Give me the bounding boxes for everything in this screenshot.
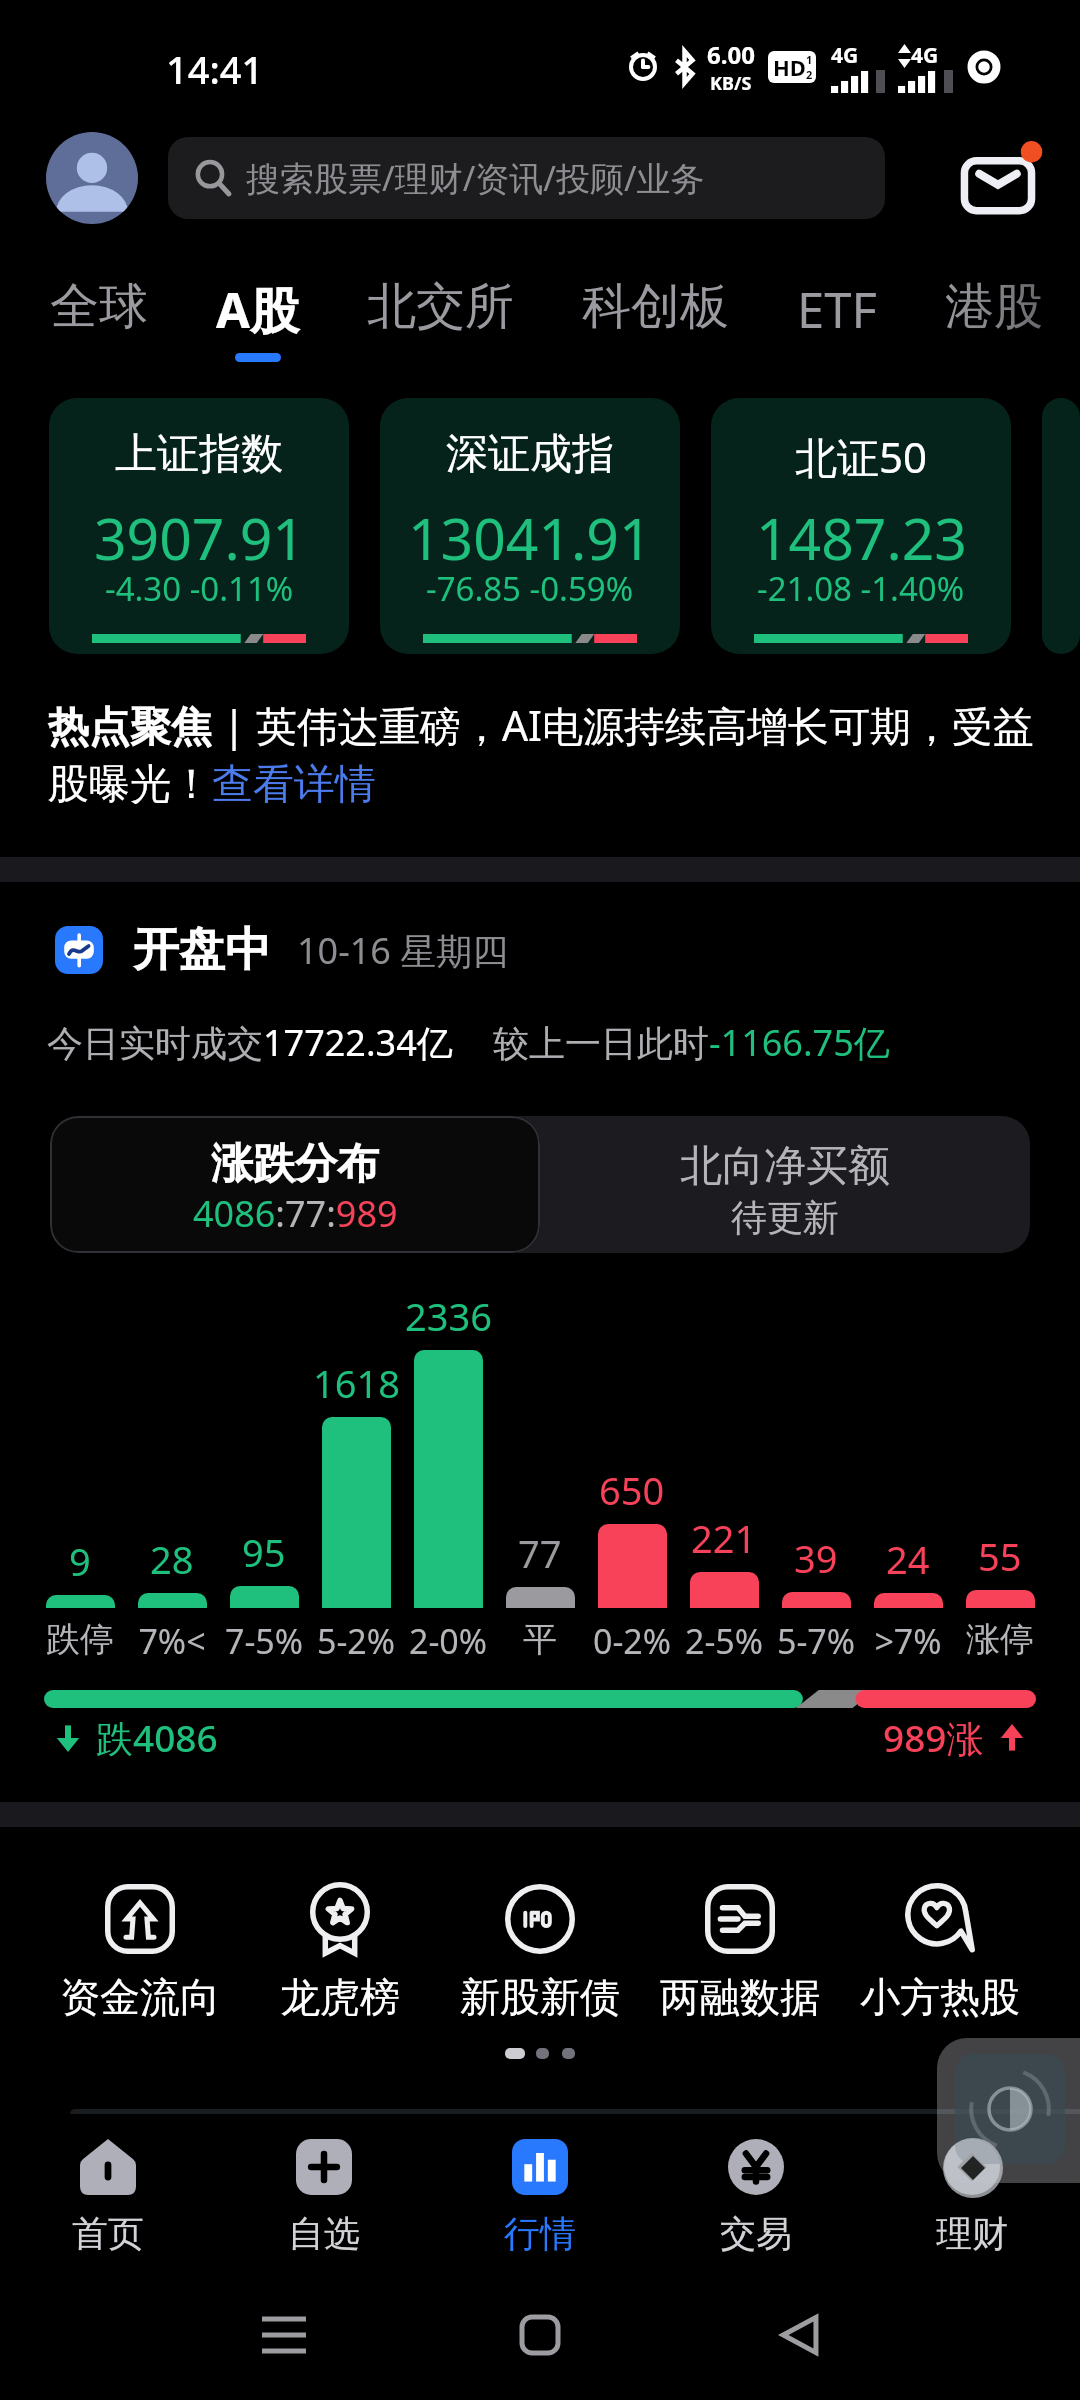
- staticText: 跌4086: [96, 1712, 218, 1763]
- staticText: 搜索股票/理财/资讯/投顾/业务: [246, 155, 705, 201]
- staticText: 2: [806, 67, 813, 82]
- staticText: 龙虎榜: [280, 1972, 400, 2022]
- staticText: 10-16 星期四: [297, 926, 509, 975]
- button[interactable]: 深证成指: [380, 398, 680, 654]
- staticText: 科创板: [582, 276, 729, 338]
- button[interactable]: 资金流向: [40, 1884, 240, 2022]
- staticText: 95: [242, 1526, 286, 1578]
- staticText: 两融数据: [660, 1972, 820, 2022]
- staticText: 全球: [50, 276, 148, 338]
- staticText: 1: [806, 52, 813, 67]
- staticText: 2-5%: [678, 1618, 770, 1664]
- button[interactable]: 新股新债: [440, 1884, 640, 2022]
- button[interactable]: 行情: [432, 2130, 648, 2260]
- staticText: 3907.91: [94, 499, 305, 577]
- staticText: ETF: [797, 276, 877, 343]
- staticText: 7%<: [126, 1618, 218, 1664]
- button[interactable]: Screenshot tool: [943, 2138, 1003, 2198]
- staticText: HD: [773, 52, 806, 82]
- staticText: 北证50: [795, 428, 928, 485]
- staticText: 13041.91: [408, 499, 652, 577]
- staticText: 资金流向: [60, 1972, 220, 2022]
- button[interactable]: 交易: [648, 2130, 864, 2260]
- staticText: 首页: [72, 2211, 144, 2256]
- staticText: 24: [886, 1533, 930, 1585]
- button[interactable]: Recent apps: [242, 2305, 326, 2365]
- button[interactable]: 全球: [16, 266, 182, 348]
- button[interactable]: 两融数据: [640, 1884, 840, 2022]
- staticText: 深证成指: [446, 428, 614, 481]
- staticText: 1487.23: [756, 499, 967, 577]
- staticText: 新股新债: [460, 1972, 620, 2022]
- staticText: >7%: [862, 1618, 954, 1664]
- staticText: 77: [518, 1527, 562, 1579]
- button[interactable]: 龙虎榜: [240, 1884, 440, 2022]
- button[interactable]: 北向净买额: [540, 1116, 1030, 1253]
- button[interactable]: Theme toggle: [955, 2054, 1065, 2164]
- button[interactable]: 上证指数: [49, 398, 349, 654]
- staticText: 4G: [831, 41, 859, 70]
- staticText: -4.30 -0.11%: [105, 566, 294, 611]
- button[interactable]: 港股: [911, 266, 1077, 348]
- button[interactable]: More indices: [1042, 398, 1080, 654]
- staticText: 2336: [405, 1290, 492, 1342]
- staticText: A股: [216, 276, 299, 343]
- staticText: 跌停: [34, 1618, 126, 1661]
- staticText: 14:41: [166, 43, 264, 95]
- staticText: 7-5%: [218, 1618, 310, 1664]
- staticText: 港股: [945, 276, 1043, 338]
- staticText: 北交所: [367, 276, 514, 338]
- button[interactable]: ETF: [763, 266, 911, 353]
- staticText: 交易: [720, 2211, 792, 2256]
- staticText: 4G: [911, 41, 939, 70]
- staticText: 涨跌分布: [211, 1138, 379, 1191]
- button[interactable]: 理财: [864, 2130, 1080, 2260]
- staticText: 涨停: [954, 1618, 1046, 1661]
- staticText: 650: [599, 1464, 665, 1516]
- button[interactable]: Home: [498, 2305, 582, 2365]
- staticText: KB/S: [710, 71, 752, 96]
- staticText: 理财: [936, 2211, 1008, 2256]
- staticText: 0-2%: [586, 1618, 678, 1664]
- button[interactable]: 科创板: [548, 266, 763, 348]
- staticText: 今日实时成交17722.34亿: [47, 1018, 453, 1067]
- staticText: 55: [978, 1530, 1022, 1582]
- staticText: -21.08 -1.40%: [757, 566, 965, 611]
- button[interactable]: Profile: [46, 132, 138, 224]
- button[interactable]: 热点聚焦 | 英伟达重磅，AI电源持续高增长可期，受益股曝光！查看详情: [0, 697, 1080, 810]
- button[interactable]: 北证50: [711, 398, 1011, 654]
- button[interactable]: 小方热股: [840, 1884, 1040, 2022]
- staticText: 1618: [313, 1357, 400, 1409]
- staticText: 行情: [504, 2211, 576, 2256]
- staticText: 小方热股: [860, 1972, 1020, 2022]
- staticText: 自选: [288, 2211, 360, 2256]
- button[interactable]: 北交所: [333, 266, 548, 348]
- button[interactable]: 首页: [0, 2130, 216, 2260]
- staticText: 9: [69, 1535, 91, 1587]
- staticText: 6.00: [707, 38, 755, 71]
- staticText: 开盘中: [133, 921, 271, 979]
- staticText: 2-0%: [402, 1618, 494, 1664]
- staticText: 989涨: [883, 1712, 984, 1763]
- staticText: 5-2%: [310, 1618, 402, 1664]
- button[interactable]: Back: [758, 2305, 842, 2365]
- button[interactable]: Messages: [958, 135, 1044, 221]
- staticText: 上证指数: [115, 428, 283, 481]
- staticText: 4086:77:989: [193, 1189, 398, 1238]
- staticText: 39: [794, 1532, 838, 1584]
- button[interactable]: 涨跌分布: [50, 1116, 540, 1253]
- staticText: 5-7%: [770, 1618, 862, 1664]
- staticText: -76.85 -0.59%: [426, 566, 634, 611]
- button[interactable]: 搜索股票/理财/资讯/投顾/业务: [168, 137, 885, 219]
- staticText: 热点聚焦 | 英伟达重磅，AI电源持续高增长可期，受益股曝光！查看详情: [48, 697, 1044, 810]
- staticText: 待更新: [731, 1195, 839, 1240]
- staticText: 221: [691, 1512, 757, 1564]
- staticText: 平: [494, 1618, 586, 1661]
- button[interactable]: A股: [182, 266, 333, 362]
- button[interactable]: 自选: [216, 2130, 432, 2260]
- staticText: 28: [150, 1533, 194, 1585]
- staticText: 北向净买额: [680, 1140, 890, 1193]
- staticText: 较上一日此时-1166.75亿: [493, 1018, 890, 1067]
